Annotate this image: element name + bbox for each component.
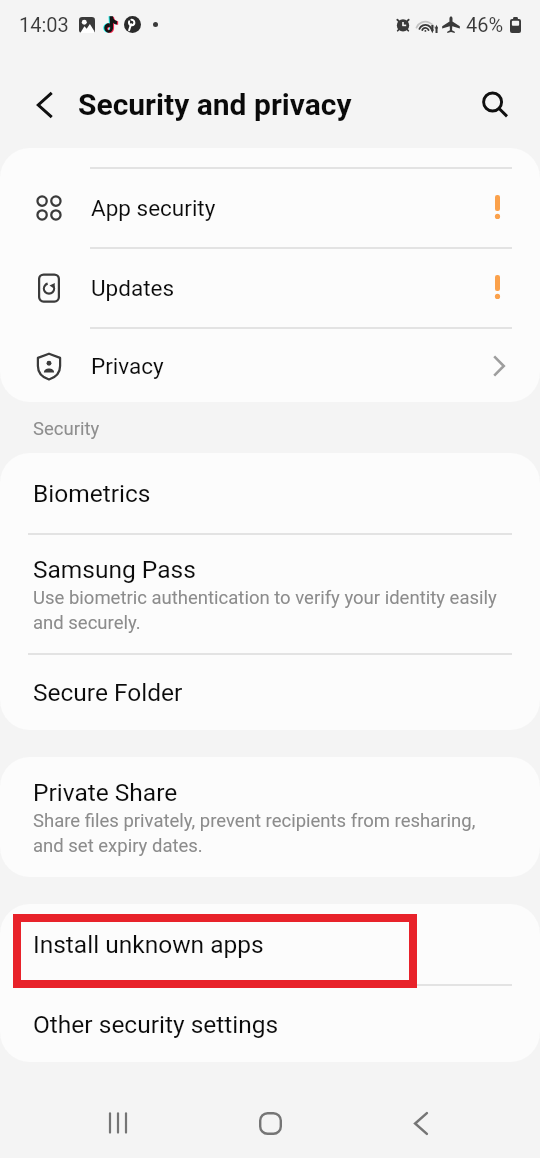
button[interactable]: Navigate up (21, 81, 69, 129)
button[interactable]: Secure Folder (0, 655, 540, 730)
staticText: Use biometric authentication to verify y… (33, 587, 504, 633)
button[interactable]: App security (0, 169, 540, 247)
button[interactable]: Search (469, 79, 521, 131)
staticText: 14:03 (19, 13, 69, 36)
staticText: Security (33, 418, 100, 440)
staticText: Install unknown apps (33, 930, 264, 959)
button[interactable]: Home (246, 1099, 294, 1147)
button[interactable]: Other security settings (0, 986, 540, 1062)
button[interactable]: Updates (0, 249, 540, 327)
button[interactable]: Private Share (0, 757, 540, 877)
staticText: Private Share (33, 778, 178, 807)
staticText: 46% (466, 13, 504, 36)
button[interactable]: Install unknown apps (0, 904, 540, 984)
button[interactable]: Back (397, 1099, 445, 1147)
staticText: App security (91, 195, 216, 221)
staticText: Samsung Pass (33, 555, 196, 584)
button[interactable]: Biometrics (0, 453, 540, 533)
staticText: Updates (91, 275, 175, 301)
staticText: Privacy (91, 353, 164, 379)
staticText: Secure Folder (33, 678, 183, 707)
staticText: Security and privacy (78, 87, 352, 122)
staticText: Share files privately, prevent recipient… (33, 810, 504, 856)
button[interactable]: Recents (94, 1099, 142, 1147)
button[interactable]: Privacy (0, 329, 540, 402)
button[interactable]: Samsung Pass (0, 535, 540, 653)
staticText: Biometrics (33, 479, 151, 508)
staticText: Other security settings (33, 1010, 279, 1039)
